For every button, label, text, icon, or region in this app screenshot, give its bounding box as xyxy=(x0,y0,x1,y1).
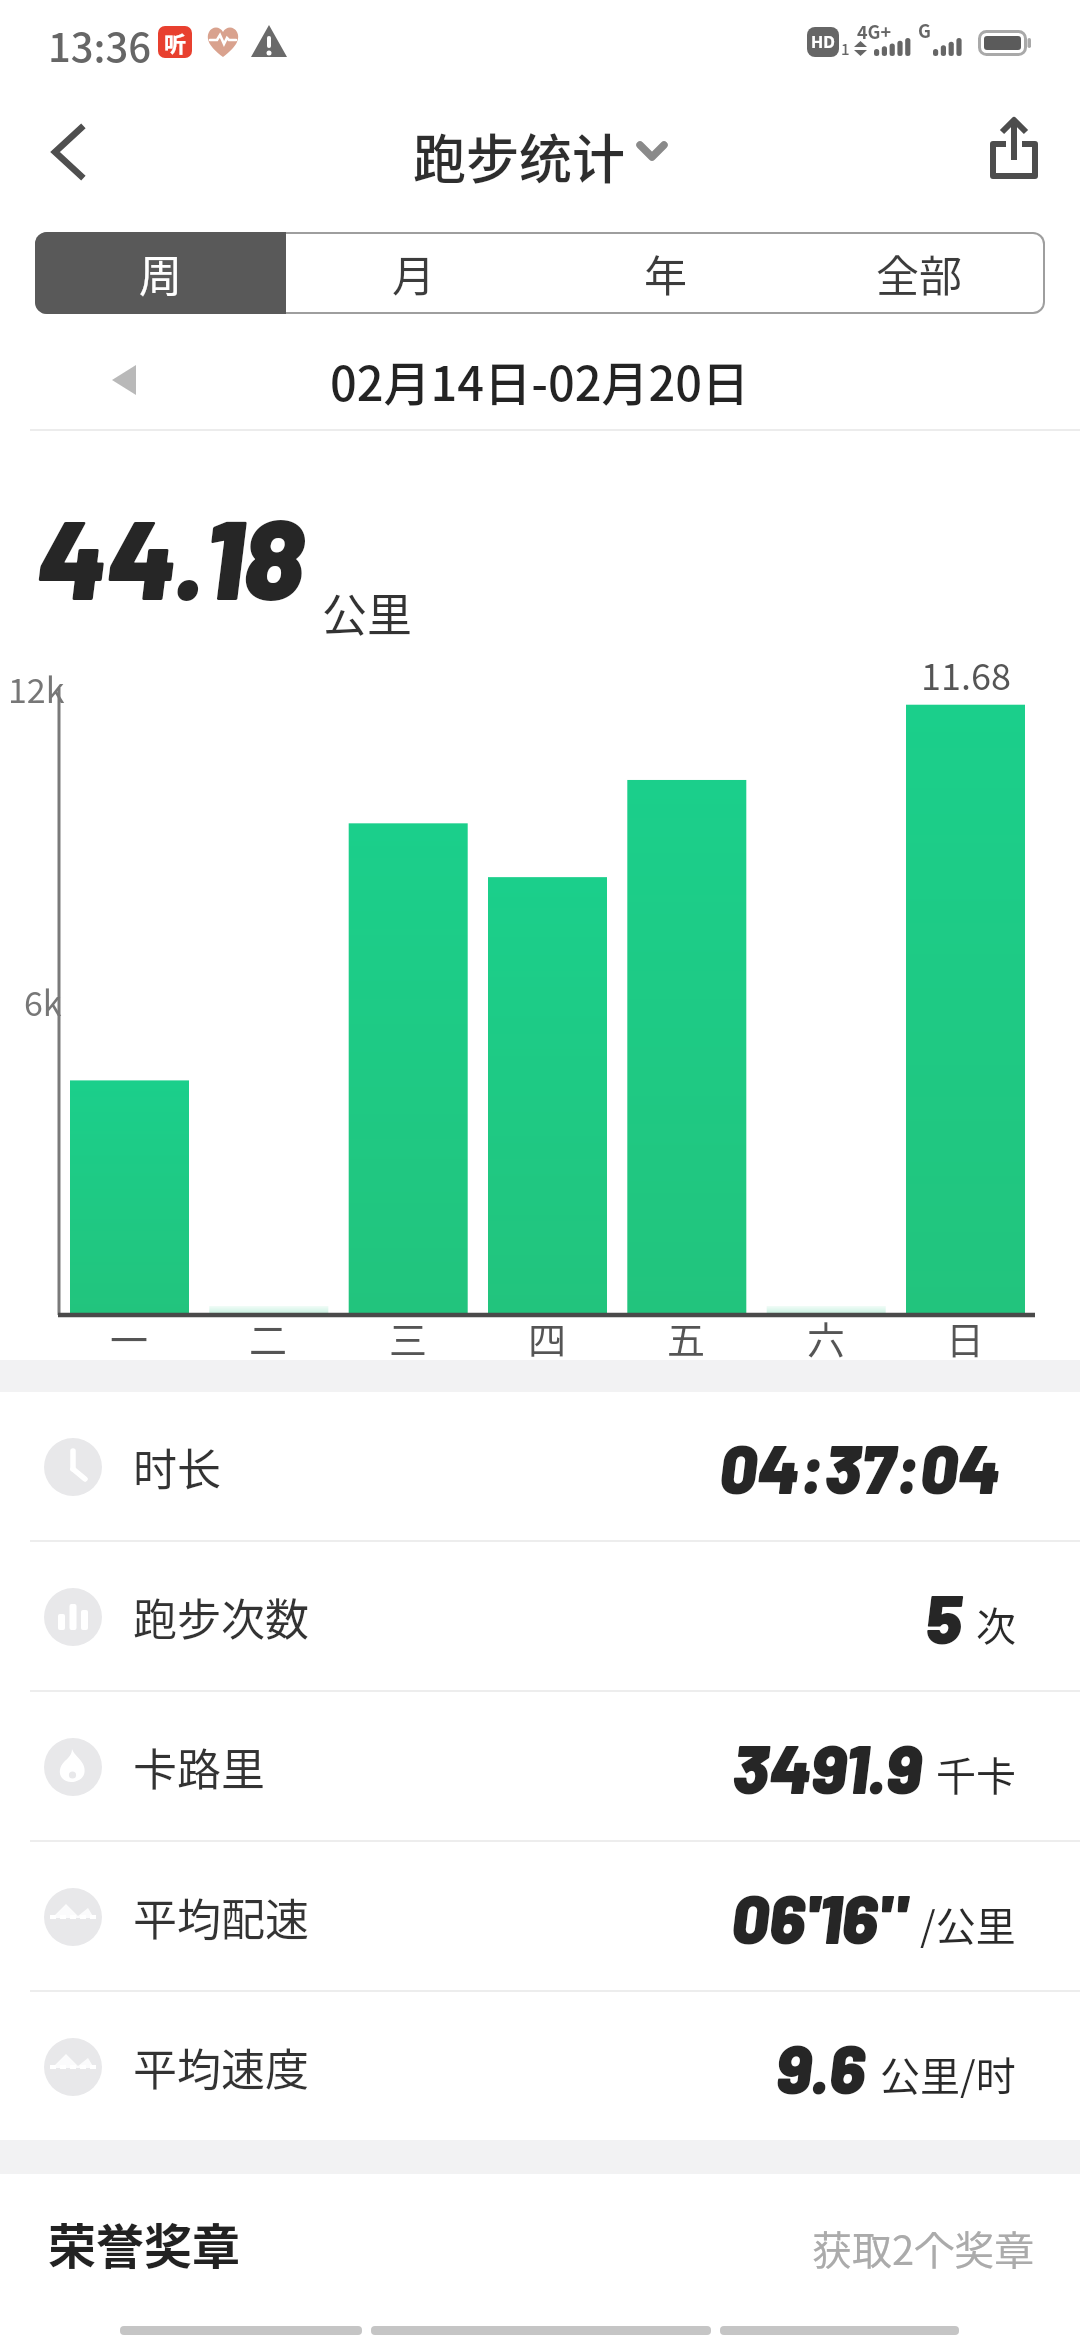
button[interactable]: 荣誉奖章 xyxy=(0,2200,1080,2295)
button[interactable]: 全部 xyxy=(793,232,1045,314)
staticText: 44.18 xyxy=(36,488,304,622)
staticText: /公里 xyxy=(920,1895,1016,1953)
staticText: 12k xyxy=(8,664,65,713)
staticText: 公里/时 xyxy=(880,2045,1016,2103)
staticText: 月 xyxy=(392,242,435,304)
button[interactable] xyxy=(30,120,110,200)
staticText: 周 xyxy=(139,242,182,304)
staticText: 卡路里 xyxy=(133,1735,265,1799)
staticText: 6k xyxy=(24,977,62,1026)
staticText: 五 xyxy=(667,1310,706,1365)
staticText: 获取2个奖章 xyxy=(812,2219,1035,2277)
button[interactable]: 平均速度 xyxy=(0,1992,1080,2142)
staticText: 13:36 xyxy=(48,16,152,74)
staticText: 二 xyxy=(249,1310,288,1365)
button[interactable]: 年 xyxy=(540,232,791,314)
staticText: 全部 xyxy=(876,242,962,304)
staticText: 3491.9 xyxy=(732,1726,922,1808)
button[interactable]: 时长 xyxy=(0,1392,1080,1542)
button[interactable]: 月 xyxy=(288,232,538,314)
staticText: 1 xyxy=(841,38,850,60)
staticText: 荣誉奖章 xyxy=(48,2208,241,2278)
button[interactable] xyxy=(972,108,1056,198)
button[interactable] xyxy=(96,352,152,408)
staticText: 跑步次数 xyxy=(133,1585,309,1649)
staticText: 听 xyxy=(164,26,187,58)
staticText: 一 xyxy=(110,1310,149,1365)
button[interactable]: 平均配速 xyxy=(0,1842,1080,1992)
staticText: 时长 xyxy=(133,1435,221,1499)
staticText: 9.6 xyxy=(776,2026,866,2108)
button[interactable]: 周 xyxy=(35,232,286,314)
staticText: 平均配速 xyxy=(133,1885,309,1949)
staticText: 四 xyxy=(528,1310,567,1365)
staticText: 04:37:04 xyxy=(719,1426,1000,1508)
staticText: 千卡 xyxy=(936,1745,1016,1803)
staticText: 跑步统计 xyxy=(413,118,625,192)
staticText: 年 xyxy=(644,242,687,304)
staticText: 六 xyxy=(807,1310,846,1365)
button[interactable]: 跑步次数 xyxy=(0,1542,1080,1692)
staticText: G xyxy=(918,17,931,43)
staticText: 平均速度 xyxy=(133,2035,309,2099)
staticText: 日 xyxy=(946,1310,985,1365)
staticText: 02月14日-02月20日 xyxy=(330,346,750,414)
button[interactable]: 卡路里 xyxy=(0,1692,1080,1842)
staticText: HD xyxy=(811,31,835,53)
staticText: 06'16" xyxy=(731,1876,906,1958)
button[interactable]: 跑步统计 xyxy=(413,118,667,192)
staticText: 公里 xyxy=(322,580,413,645)
staticText: 三 xyxy=(389,1310,428,1365)
staticText: 5 xyxy=(925,1576,962,1658)
staticText: 11.68 xyxy=(921,648,1011,700)
staticText: 次 xyxy=(976,1595,1016,1653)
staticText: 4G+ xyxy=(857,18,892,44)
